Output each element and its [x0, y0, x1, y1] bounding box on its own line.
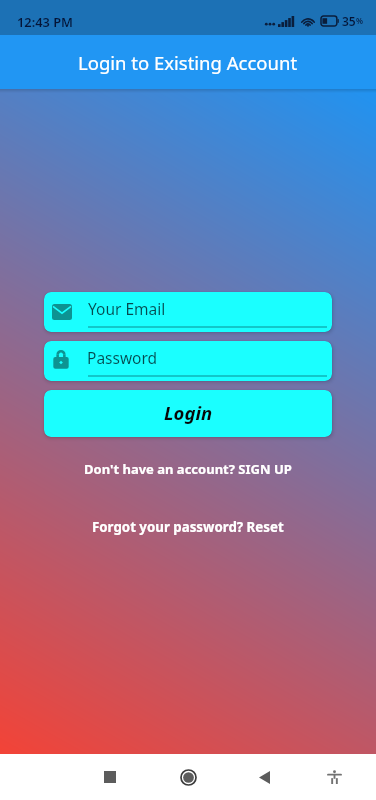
button[interactable]: Password — [44, 341, 332, 381]
button[interactable]: Forgot your password? Reset — [92, 518, 284, 536]
staticText: 12:43 PM — [17, 13, 73, 30]
button[interactable]: Recent apps — [89, 756, 131, 798]
staticText: Your Email — [88, 298, 166, 319]
button[interactable]: Accessibility — [313, 756, 355, 798]
button[interactable]: Back — [243, 756, 285, 798]
button[interactable]: Home — [167, 756, 209, 798]
button[interactable]: Don't have an account? SIGN UP — [84, 460, 292, 478]
button[interactable]: Login — [44, 390, 332, 437]
button[interactable]: Your Email — [44, 292, 332, 332]
staticText: 35 — [342, 13, 356, 29]
staticText: Login to Existing Account — [78, 50, 298, 75]
staticText: % — [356, 15, 363, 26]
staticText: Login — [164, 400, 213, 425]
staticText: Password — [87, 347, 158, 368]
